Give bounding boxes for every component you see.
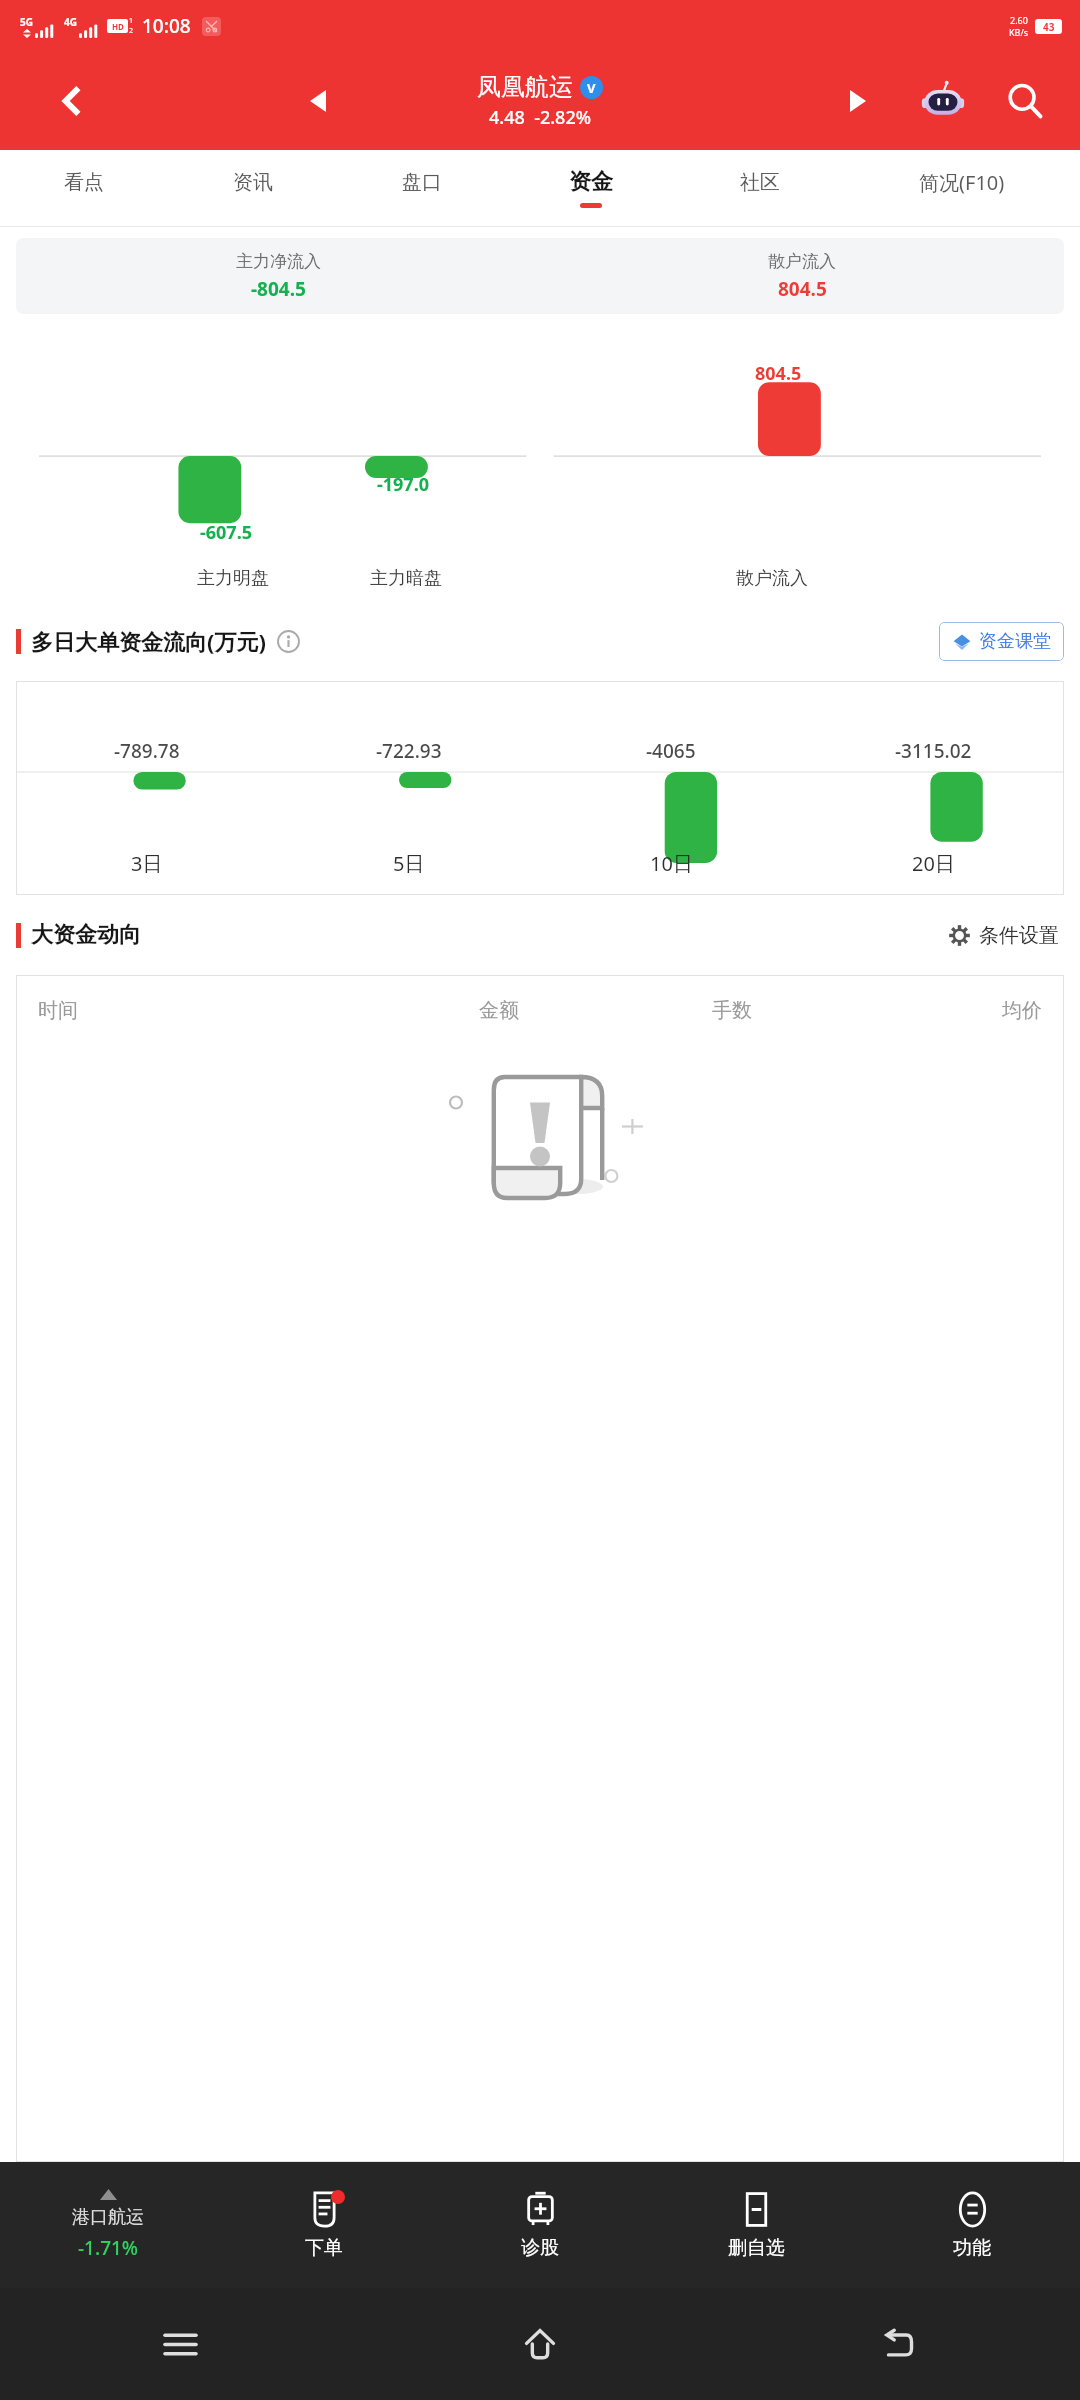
staticText: 3日 xyxy=(131,850,163,877)
staticText: 散户流入 xyxy=(736,567,808,590)
staticText: 804.5 xyxy=(755,361,802,386)
staticText: 资金课堂 xyxy=(979,630,1051,653)
staticText: 时间 xyxy=(38,998,371,1023)
button[interactable]: Search xyxy=(996,72,1054,130)
staticText: 主力明盘 xyxy=(197,567,269,590)
staticText: 资讯 xyxy=(233,170,273,195)
staticText: 4G xyxy=(64,15,77,29)
button[interactable]: 下单 xyxy=(216,2162,432,2288)
button[interactable]: 资金课堂 xyxy=(939,622,1064,661)
staticText: 凤凰航运 xyxy=(477,72,573,102)
staticText: 港口航运 xyxy=(72,2206,144,2229)
staticText: -197.0 xyxy=(377,472,430,497)
staticText: 删自选 xyxy=(728,2236,785,2260)
staticText: 功能 xyxy=(953,2236,991,2260)
button[interactable]: Home xyxy=(360,2288,720,2400)
button[interactable]: Back xyxy=(720,2288,1080,2400)
staticText: 手数 xyxy=(712,998,752,1023)
staticText: 多日大单资金流向(万元) xyxy=(31,626,266,656)
staticText: 20日 xyxy=(912,850,955,877)
staticText: -607.5 xyxy=(200,520,253,545)
staticText: 43 xyxy=(1043,20,1055,34)
button[interactable]: 资讯 xyxy=(168,150,337,226)
button[interactable]: 诊股 xyxy=(432,2162,648,2288)
button[interactable]: 看点 xyxy=(0,150,168,226)
staticText: -3115.02 xyxy=(895,738,972,764)
staticText: 诊股 xyxy=(521,2236,559,2260)
staticText: 5G xyxy=(20,15,33,29)
staticText: -1.71% xyxy=(78,2235,139,2261)
staticText: 条件设置 xyxy=(979,923,1059,948)
staticText: 散户流入 xyxy=(768,251,836,272)
staticText: -804.5 xyxy=(251,276,306,302)
staticText: HD xyxy=(112,21,124,32)
staticText: 简况(F10) xyxy=(919,169,1005,196)
staticText: 804.5 xyxy=(778,276,827,302)
staticText: 看点 xyxy=(64,170,104,195)
button[interactable]: Next stock xyxy=(832,75,884,127)
button[interactable]: Previous stock xyxy=(292,75,344,127)
staticText: -722.93 xyxy=(376,738,442,764)
staticText: 2.60 xyxy=(1010,14,1028,26)
button[interactable]: 简况(F10) xyxy=(844,150,1080,226)
button[interactable]: Recent apps xyxy=(0,2288,360,2400)
staticText: 4.48 -2.82% xyxy=(489,105,592,130)
staticText: 下单 xyxy=(305,2236,343,2260)
staticText: 5日 xyxy=(393,850,425,877)
staticText: 大资金动向 xyxy=(31,921,141,949)
staticText: 盘口 xyxy=(402,170,442,195)
staticText: 资金 xyxy=(569,168,613,196)
button[interactable]: 资金 xyxy=(506,150,675,226)
staticText: 10日 xyxy=(650,850,693,877)
staticText: 主力净流入 xyxy=(236,251,321,272)
button[interactable]: 社区 xyxy=(675,150,844,226)
staticText: 1 xyxy=(129,16,134,26)
staticText: 主力暗盘 xyxy=(370,567,442,590)
button[interactable]: Info xyxy=(277,630,300,653)
staticText: 社区 xyxy=(740,170,780,195)
staticText: V xyxy=(587,79,596,97)
button[interactable]: 盘口 xyxy=(337,150,506,226)
button[interactable]: 功能 xyxy=(864,2162,1080,2288)
button[interactable]: Back xyxy=(42,71,102,131)
button[interactable]: 主力净流入 xyxy=(16,238,1064,314)
button[interactable]: 条件设置 xyxy=(943,918,1064,953)
staticText: 2 xyxy=(129,26,134,36)
button[interactable]: AI assistant xyxy=(916,74,970,128)
staticText: 均价 xyxy=(1002,998,1042,1023)
staticText: -4065 xyxy=(646,738,696,764)
button[interactable]: 凤凰航运 xyxy=(477,72,603,130)
button[interactable]: 港口航运 xyxy=(0,2162,216,2288)
button[interactable]: 删自选 xyxy=(648,2162,864,2288)
staticText: -789.78 xyxy=(114,738,180,764)
staticText: 金额 xyxy=(479,998,519,1023)
staticText: KB/s xyxy=(1009,26,1029,38)
staticText: 10:08 xyxy=(142,13,191,39)
